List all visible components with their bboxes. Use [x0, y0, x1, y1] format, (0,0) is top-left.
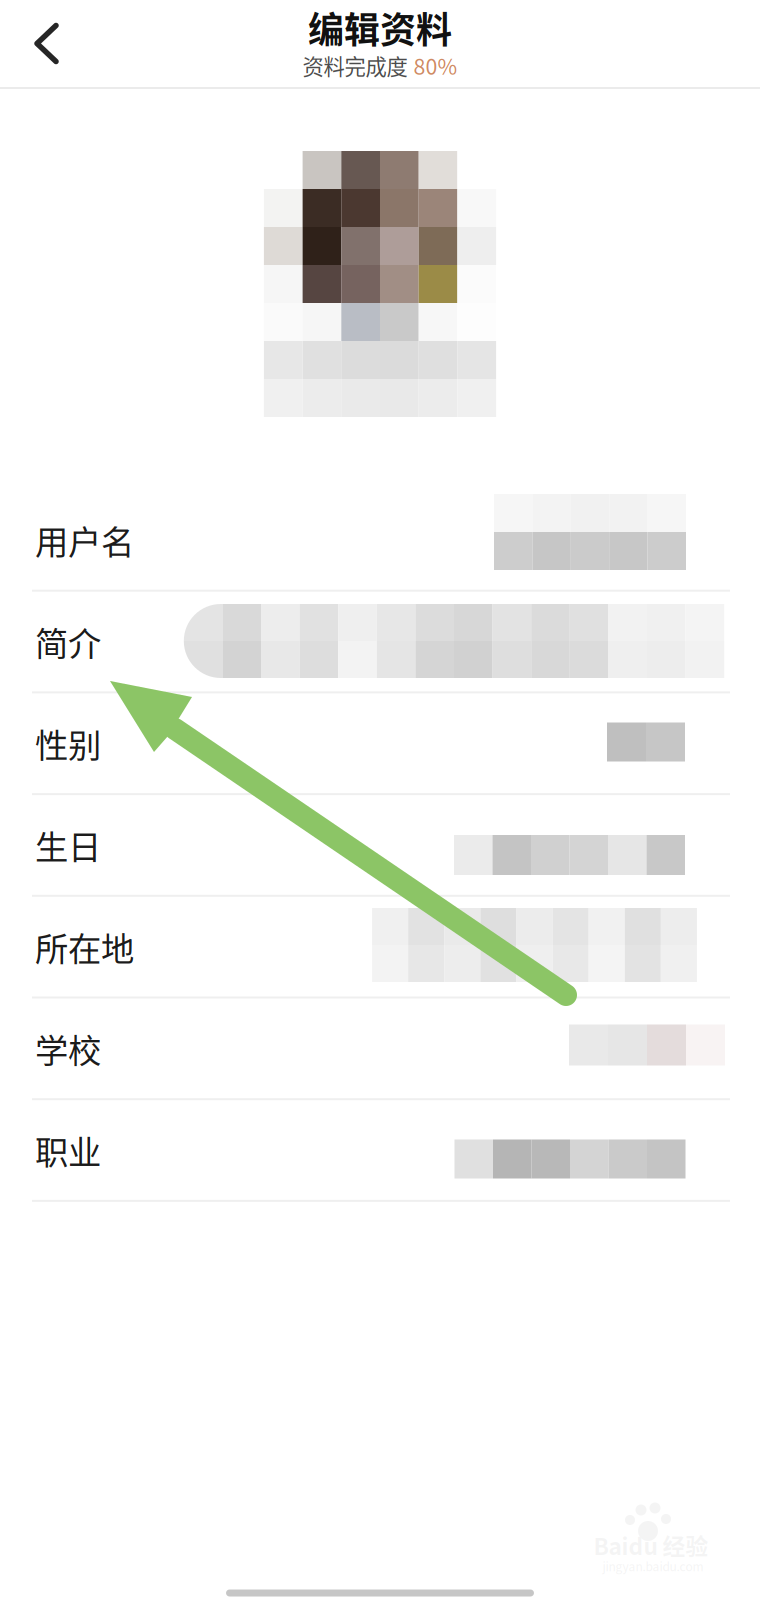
button[interactable]: 生日	[0, 794, 760, 896]
staticText: 编辑资料	[308, 1, 452, 53]
staticText: 简介	[35, 617, 101, 666]
button[interactable]: 职业	[0, 1099, 760, 1201]
staticText: Baidu 经验	[593, 1529, 708, 1561]
button[interactable]: 返回	[2, 0, 92, 87]
staticText: 学校	[35, 1024, 101, 1072]
staticText: 80%	[413, 50, 457, 81]
button[interactable]: 学校	[0, 997, 760, 1099]
staticText: 用户名	[35, 516, 134, 564]
button[interactable]: 性别	[0, 692, 760, 794]
button[interactable]: 用户名	[0, 489, 760, 591]
staticText: 职业	[35, 1126, 101, 1174]
staticText: 性别	[35, 719, 101, 767]
button[interactable]: 简介	[0, 591, 760, 692]
button[interactable]: 更换头像	[264, 151, 496, 417]
staticText: jingyan.baidu.com	[602, 1557, 703, 1575]
staticText: 所在地	[35, 922, 134, 971]
staticText: 生日	[35, 821, 101, 869]
staticText: 资料完成度	[302, 50, 407, 81]
button[interactable]: 所在地	[0, 896, 760, 997]
